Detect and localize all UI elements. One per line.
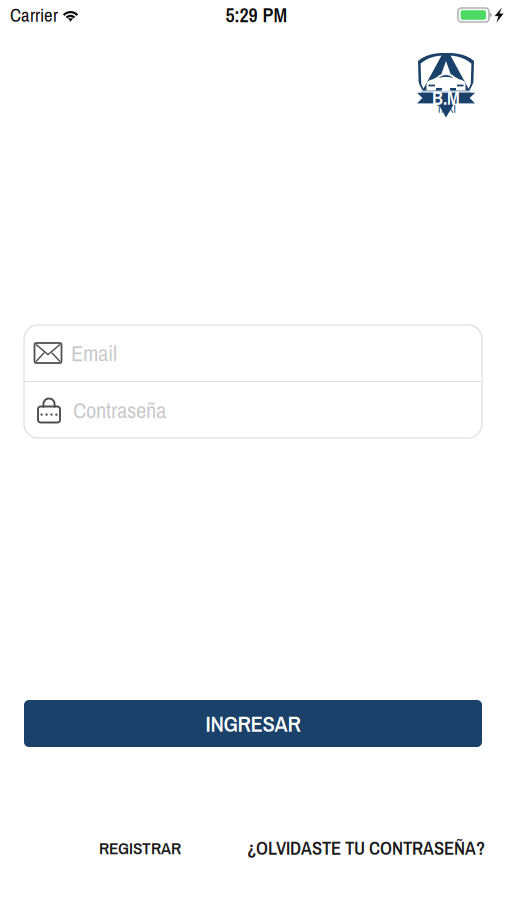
staticText: Contraseña [73, 395, 166, 425]
button[interactable]: Contraseña [24, 382, 482, 438]
button[interactable]: Email [24, 325, 482, 381]
staticText: ¿OLVIDASTE TU CONTRASEÑA? [247, 835, 485, 860]
staticText: REGISTRAR [99, 836, 181, 860]
staticText: Email [71, 338, 117, 368]
button[interactable]: ¿OLVIDASTE TU CONTRASEÑA? [247, 837, 485, 859]
staticText: 5:29 PM [225, 1, 287, 28]
staticText: INGRESAR [205, 708, 300, 739]
staticText: B.M [432, 85, 460, 110]
staticText: TAXI [436, 102, 455, 116]
button[interactable]: REGISTRAR [90, 837, 190, 859]
button[interactable]: INGRESAR [24, 700, 482, 747]
staticText: Carrier [10, 2, 58, 27]
